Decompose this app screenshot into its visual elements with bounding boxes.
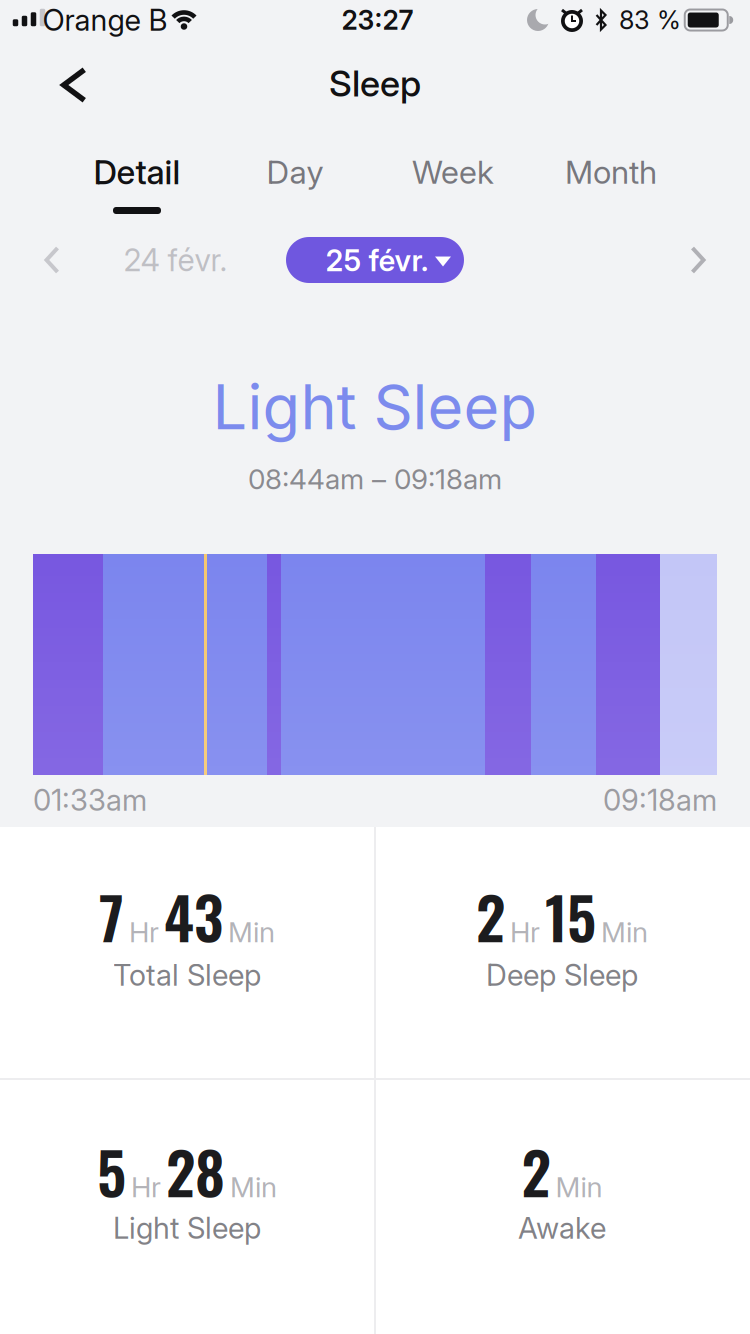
staticText: Awake xyxy=(518,1211,606,1245)
staticText: Month xyxy=(565,153,657,191)
staticText: Total Sleep xyxy=(113,958,261,992)
staticText: 7 xyxy=(99,873,124,959)
staticText: Day xyxy=(266,153,323,191)
staticText: 2 xyxy=(476,873,505,959)
button[interactable]: Next day xyxy=(678,234,717,286)
staticText: 01:33am xyxy=(33,783,147,817)
staticText: 83 % xyxy=(619,5,681,35)
staticText: Hr xyxy=(129,915,159,948)
button[interactable]: Detail xyxy=(62,142,212,202)
staticText: Min xyxy=(555,1170,602,1203)
staticText: Hr xyxy=(131,1170,161,1203)
staticText: 24 févr. xyxy=(123,242,227,278)
staticText: Light Sleep xyxy=(212,371,537,443)
staticText: Detail xyxy=(93,152,180,192)
staticText: Min xyxy=(230,1170,277,1203)
staticText: 09:18am xyxy=(603,783,717,817)
button[interactable]: Day xyxy=(220,142,370,202)
staticText: Hr xyxy=(510,915,540,948)
staticText: 43 xyxy=(164,873,223,959)
staticText: Min xyxy=(228,915,275,948)
button[interactable]: Back xyxy=(49,55,99,115)
staticText: Sleep xyxy=(329,62,421,105)
staticText: 23:27 xyxy=(341,4,413,36)
staticText: Light Sleep xyxy=(113,1211,261,1245)
staticText: Min xyxy=(601,915,648,948)
button[interactable]: Month xyxy=(536,142,686,202)
staticText: 15 xyxy=(545,873,596,959)
staticText: 5 xyxy=(97,1128,126,1214)
staticText: 08:44am – 09:18am xyxy=(248,462,502,495)
staticText: 25 févr. xyxy=(325,243,428,278)
button[interactable]: 24 févr. xyxy=(115,234,235,286)
staticText: Week xyxy=(412,153,494,191)
button[interactable]: Previous day xyxy=(32,234,71,286)
staticText: 28 xyxy=(166,1128,225,1214)
staticText: Deep Sleep xyxy=(486,958,638,992)
staticText: 2 xyxy=(521,1128,550,1214)
button[interactable]: 25 févr. xyxy=(286,237,464,283)
staticText: Orange B xyxy=(42,3,167,37)
button[interactable]: Week xyxy=(378,142,528,202)
